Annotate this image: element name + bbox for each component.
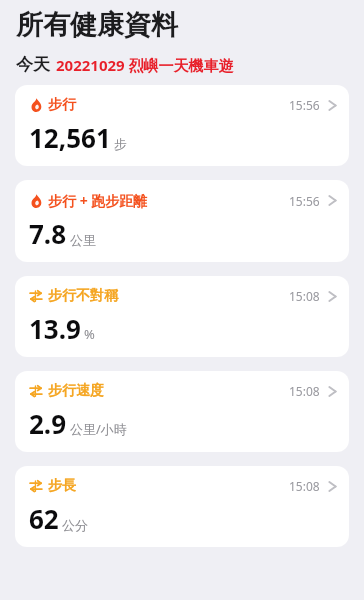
staticText: 步 [114,136,127,152]
staticText: 步行 + 跑步距離 [48,191,148,210]
staticText: 13.9 [29,311,81,346]
staticText: 7.8 [29,216,67,251]
other: Open details [328,479,337,494]
other: Open details [328,98,337,113]
staticText: 15:56 [289,97,320,113]
staticText: 今天 [16,54,50,75]
staticText: 15:08 [289,383,320,399]
staticText: 15:08 [289,288,320,304]
staticText: 步長 [48,477,76,495]
other: Open details [328,384,337,399]
staticText: 步行速度 [48,382,104,400]
button[interactable]: Activity [15,180,349,262]
other: Open details [328,193,337,208]
other: Walking asymmetry [29,479,43,493]
other: Activity [29,98,43,112]
staticText: 所有健康資料 [16,8,178,42]
other: Walking asymmetry [29,384,43,398]
staticText: 公里 [70,232,96,248]
other: Activity [29,194,43,208]
other: Walking asymmetry [29,289,43,303]
staticText: 公分 [62,517,88,533]
button[interactable]: Walking asymmetry [15,276,349,357]
staticText: % [84,325,95,343]
staticText: 步行不對稱 [48,287,118,305]
staticText: 15:08 [289,478,320,494]
staticText: 62 [29,501,59,536]
staticText: 20221029 烈嶼一天機車遊 [56,55,234,75]
staticText: 步行 [48,96,76,114]
other: Open details [328,289,337,304]
staticText: 12,561 [29,120,111,155]
button[interactable]: Activity [15,85,349,166]
button[interactable]: Walking asymmetry [15,371,349,452]
staticText: 公里/小時 [70,420,127,438]
staticText: 2.9 [29,406,67,441]
button[interactable]: Walking asymmetry [15,466,349,547]
staticText: 15:56 [289,193,320,209]
